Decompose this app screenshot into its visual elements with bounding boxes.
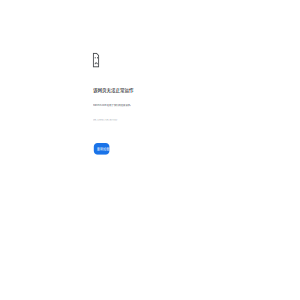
staticText: ERR_CONNECTION_REFUSED [93, 118, 300, 144]
staticText: hibtech.com 拒绝了我们的连接请求。 [93, 103, 300, 136]
staticText: 该网页无法正常运作 [93, 86, 300, 152]
staticText: 重新加载 [97, 147, 225, 193]
button[interactable]: 重新加载 [94, 143, 109, 155]
